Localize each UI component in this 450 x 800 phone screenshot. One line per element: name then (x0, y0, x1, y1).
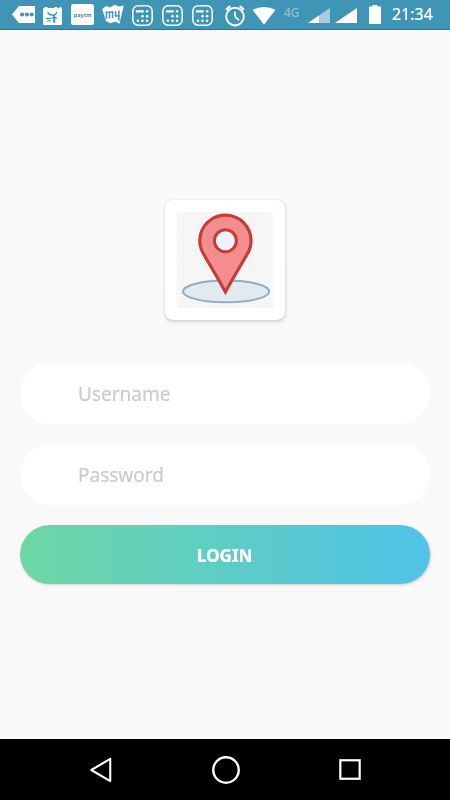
button[interactable]: Username (20, 363, 430, 424)
staticText: paytm (74, 11, 92, 18)
button[interactable]: Password (20, 444, 430, 505)
button[interactable]: Home (188, 739, 264, 800)
staticText: 21:34 (392, 3, 433, 25)
button[interactable]: Back (63, 739, 139, 800)
staticText: LOGIN (197, 544, 253, 567)
staticText: Username (78, 381, 171, 407)
button[interactable]: LOGIN (20, 525, 430, 584)
staticText: 4G (284, 4, 300, 20)
button[interactable]: Recent apps (312, 739, 388, 800)
staticText: Password (78, 462, 164, 488)
